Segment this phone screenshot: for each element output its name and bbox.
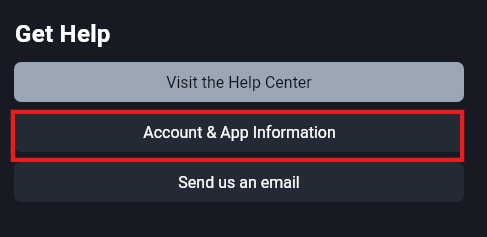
staticText: Visit the Help Center	[166, 73, 312, 92]
button[interactable]: Account & App Information	[14, 112, 464, 152]
staticText: Get Help	[15, 20, 111, 48]
button[interactable]: Visit the Help Center	[14, 62, 464, 102]
button[interactable]: Send us an email	[14, 162, 464, 202]
staticText: Send us an email	[178, 173, 300, 192]
staticText: Account & App Information	[143, 123, 336, 142]
